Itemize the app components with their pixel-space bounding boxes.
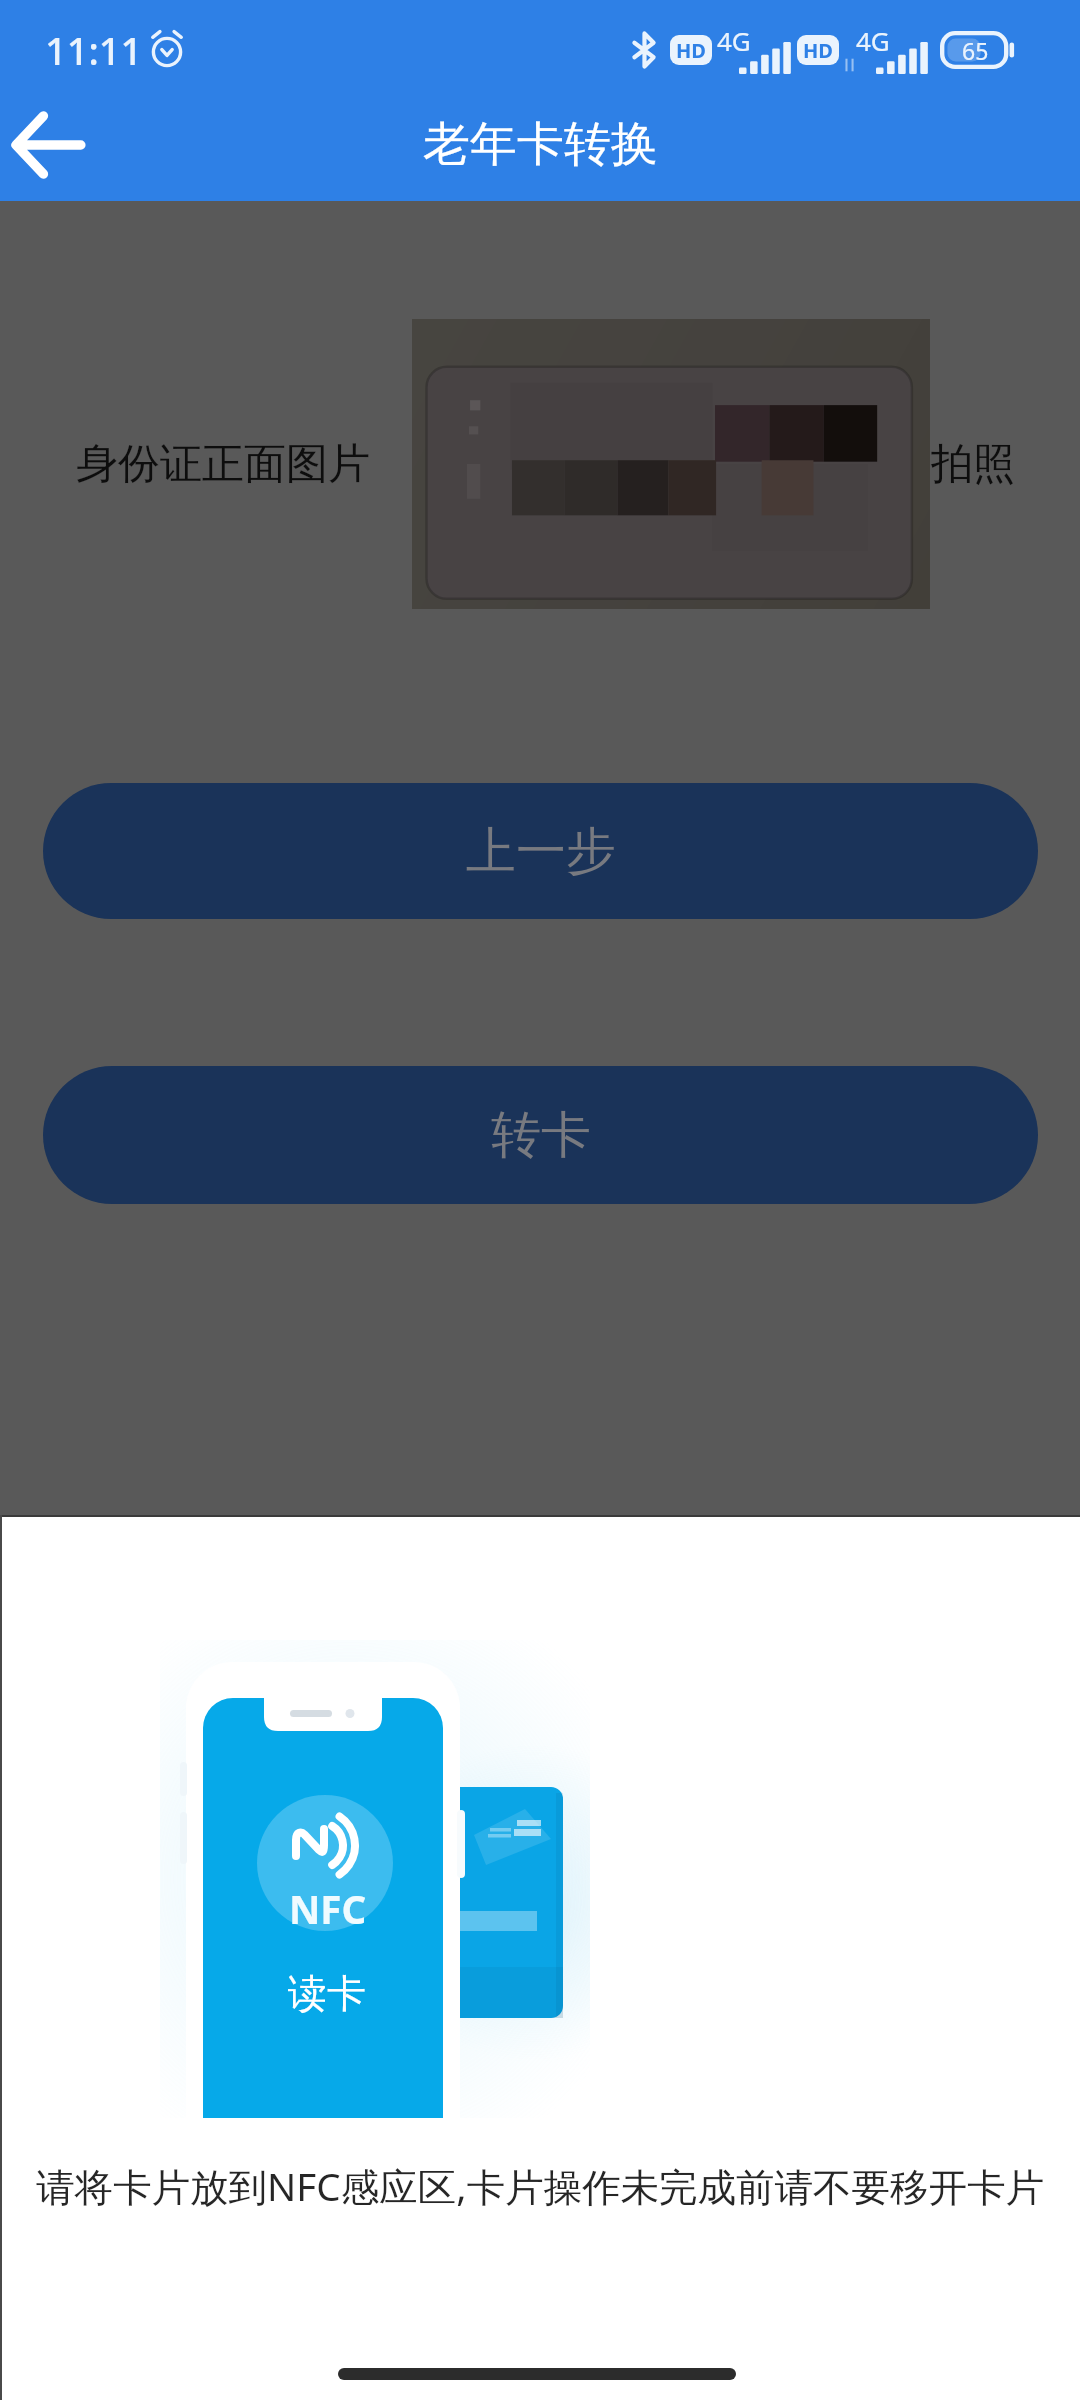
button[interactable]: 转卡 [43, 1066, 1038, 1204]
staticText: 老年卡转换 [423, 115, 658, 174]
staticText: 请将卡片放到NFC感应区,卡片操作未完成前请不要移开卡片 [0, 2160, 1080, 2213]
button[interactable]: 上一步 [43, 783, 1038, 919]
staticText: 65 [962, 35, 989, 66]
staticText: 读卡 [288, 1969, 366, 2018]
staticText: 身份证正面图片 [76, 438, 370, 491]
button[interactable]: Back [0, 100, 110, 201]
staticText: 上一步 [466, 820, 616, 883]
staticText: HD [803, 37, 833, 64]
staticText: 11:11 [45, 24, 143, 76]
button[interactable] [412, 319, 930, 609]
staticText: NFC [289, 1883, 367, 1935]
staticText: 4G [717, 23, 751, 58]
staticText: 拍照 [931, 438, 1015, 491]
staticText: 4G [856, 23, 890, 58]
button[interactable]: 拍照 [931, 319, 1015, 609]
staticText: 转卡 [491, 1104, 591, 1167]
staticText: HD [676, 37, 706, 64]
